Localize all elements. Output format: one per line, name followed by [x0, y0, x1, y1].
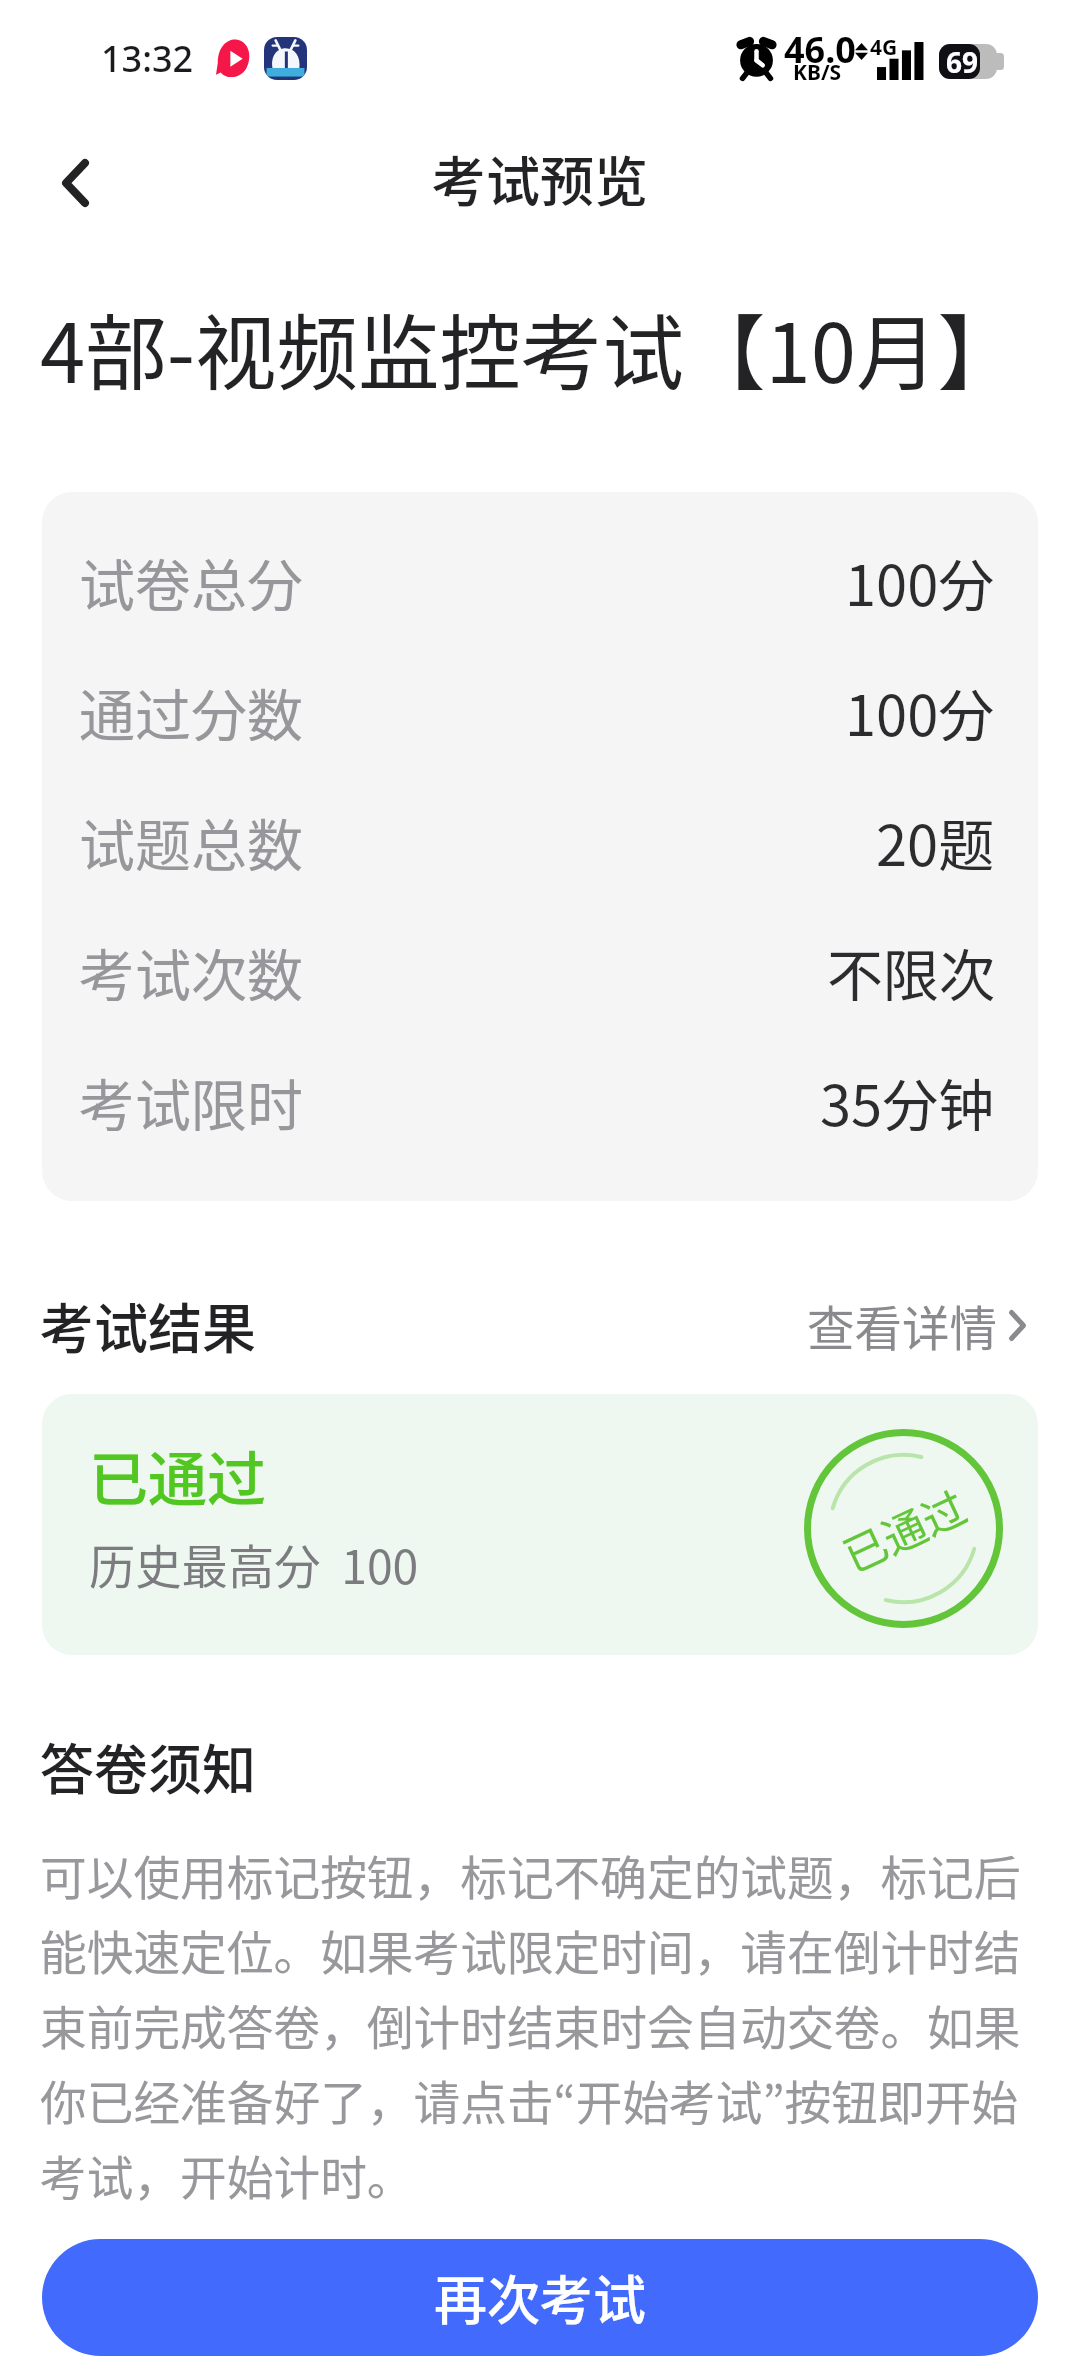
staticText: 69	[946, 43, 979, 78]
staticText: 可以使用标记按钮，标记不确定的试题，标记后能快速定位。如果考试限定时间，请在倒计…	[40, 1841, 1042, 2208]
staticText: 100分	[845, 671, 995, 741]
staticText: 已通过	[89, 1433, 267, 1518]
staticText: 通过分数	[79, 671, 303, 741]
staticText: 20题	[876, 801, 995, 871]
staticText: 历史最高分 100	[89, 1530, 419, 1597]
button[interactable]: 已通过	[42, 1394, 1038, 1655]
staticText: 已通过	[832, 1474, 975, 1584]
staticText: 4G	[870, 33, 898, 62]
staticText: 考试次数	[79, 931, 303, 1001]
staticText: 4部-视频监控考试【10月】	[40, 288, 1019, 406]
staticText: 35分钟	[820, 1061, 995, 1131]
button[interactable]: 再次考试	[42, 2239, 1038, 2356]
staticText: 考试预览	[432, 139, 648, 217]
staticText: 再次考试	[434, 2259, 646, 2336]
button[interactable]: Back	[20, 128, 130, 238]
staticText: 考试结果	[40, 1286, 256, 1364]
staticText: 考试限时	[79, 1061, 303, 1131]
staticText: 试卷总分	[79, 541, 303, 611]
staticText: 100分	[845, 541, 995, 611]
staticText: KB/S	[793, 58, 842, 87]
staticText: 查看详情	[807, 1291, 997, 1360]
staticText: 46.0	[784, 25, 856, 74]
staticText: 不限次	[827, 931, 995, 1001]
button[interactable]: 查看详情	[807, 1291, 1026, 1360]
staticText: 答卷须知	[40, 1727, 256, 1805]
staticText: 试题总数	[79, 801, 303, 871]
staticText: 13:32	[101, 34, 194, 83]
